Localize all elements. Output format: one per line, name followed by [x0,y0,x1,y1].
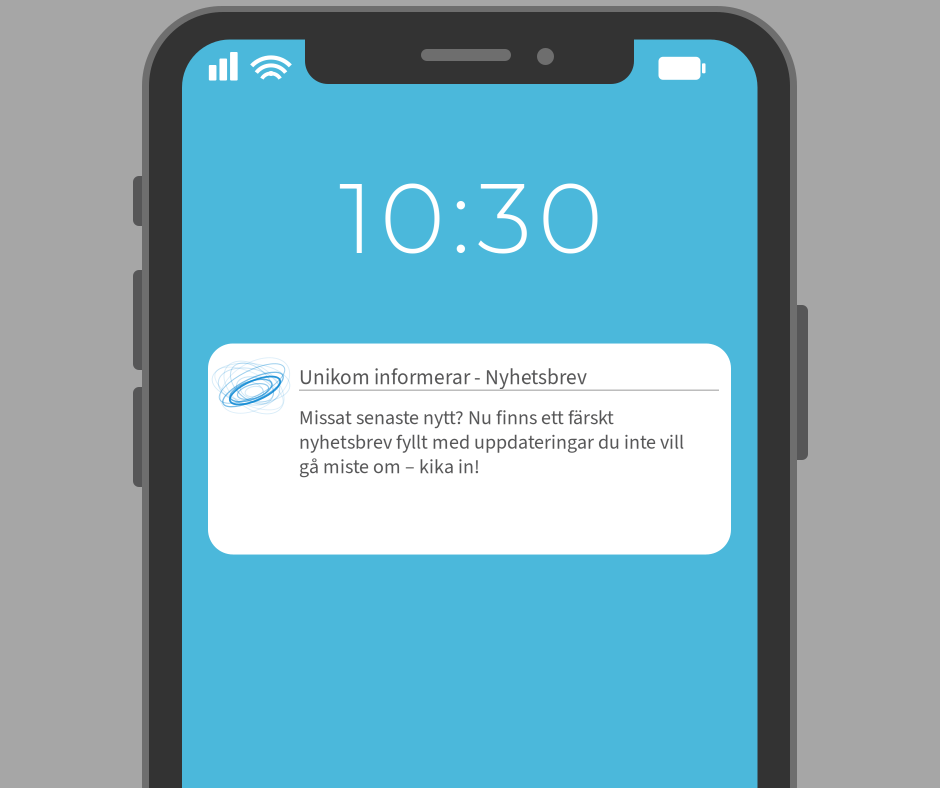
staticText: 10:30 [339,158,603,278]
staticText: Missat senaste nytt? Nu finns ett färskt… [299,404,684,481]
staticText: Unikom informerar - Nyhetsbrev [299,362,587,393]
button[interactable]: Unikom informerar - Nyhetsbrev [208,343,731,554]
